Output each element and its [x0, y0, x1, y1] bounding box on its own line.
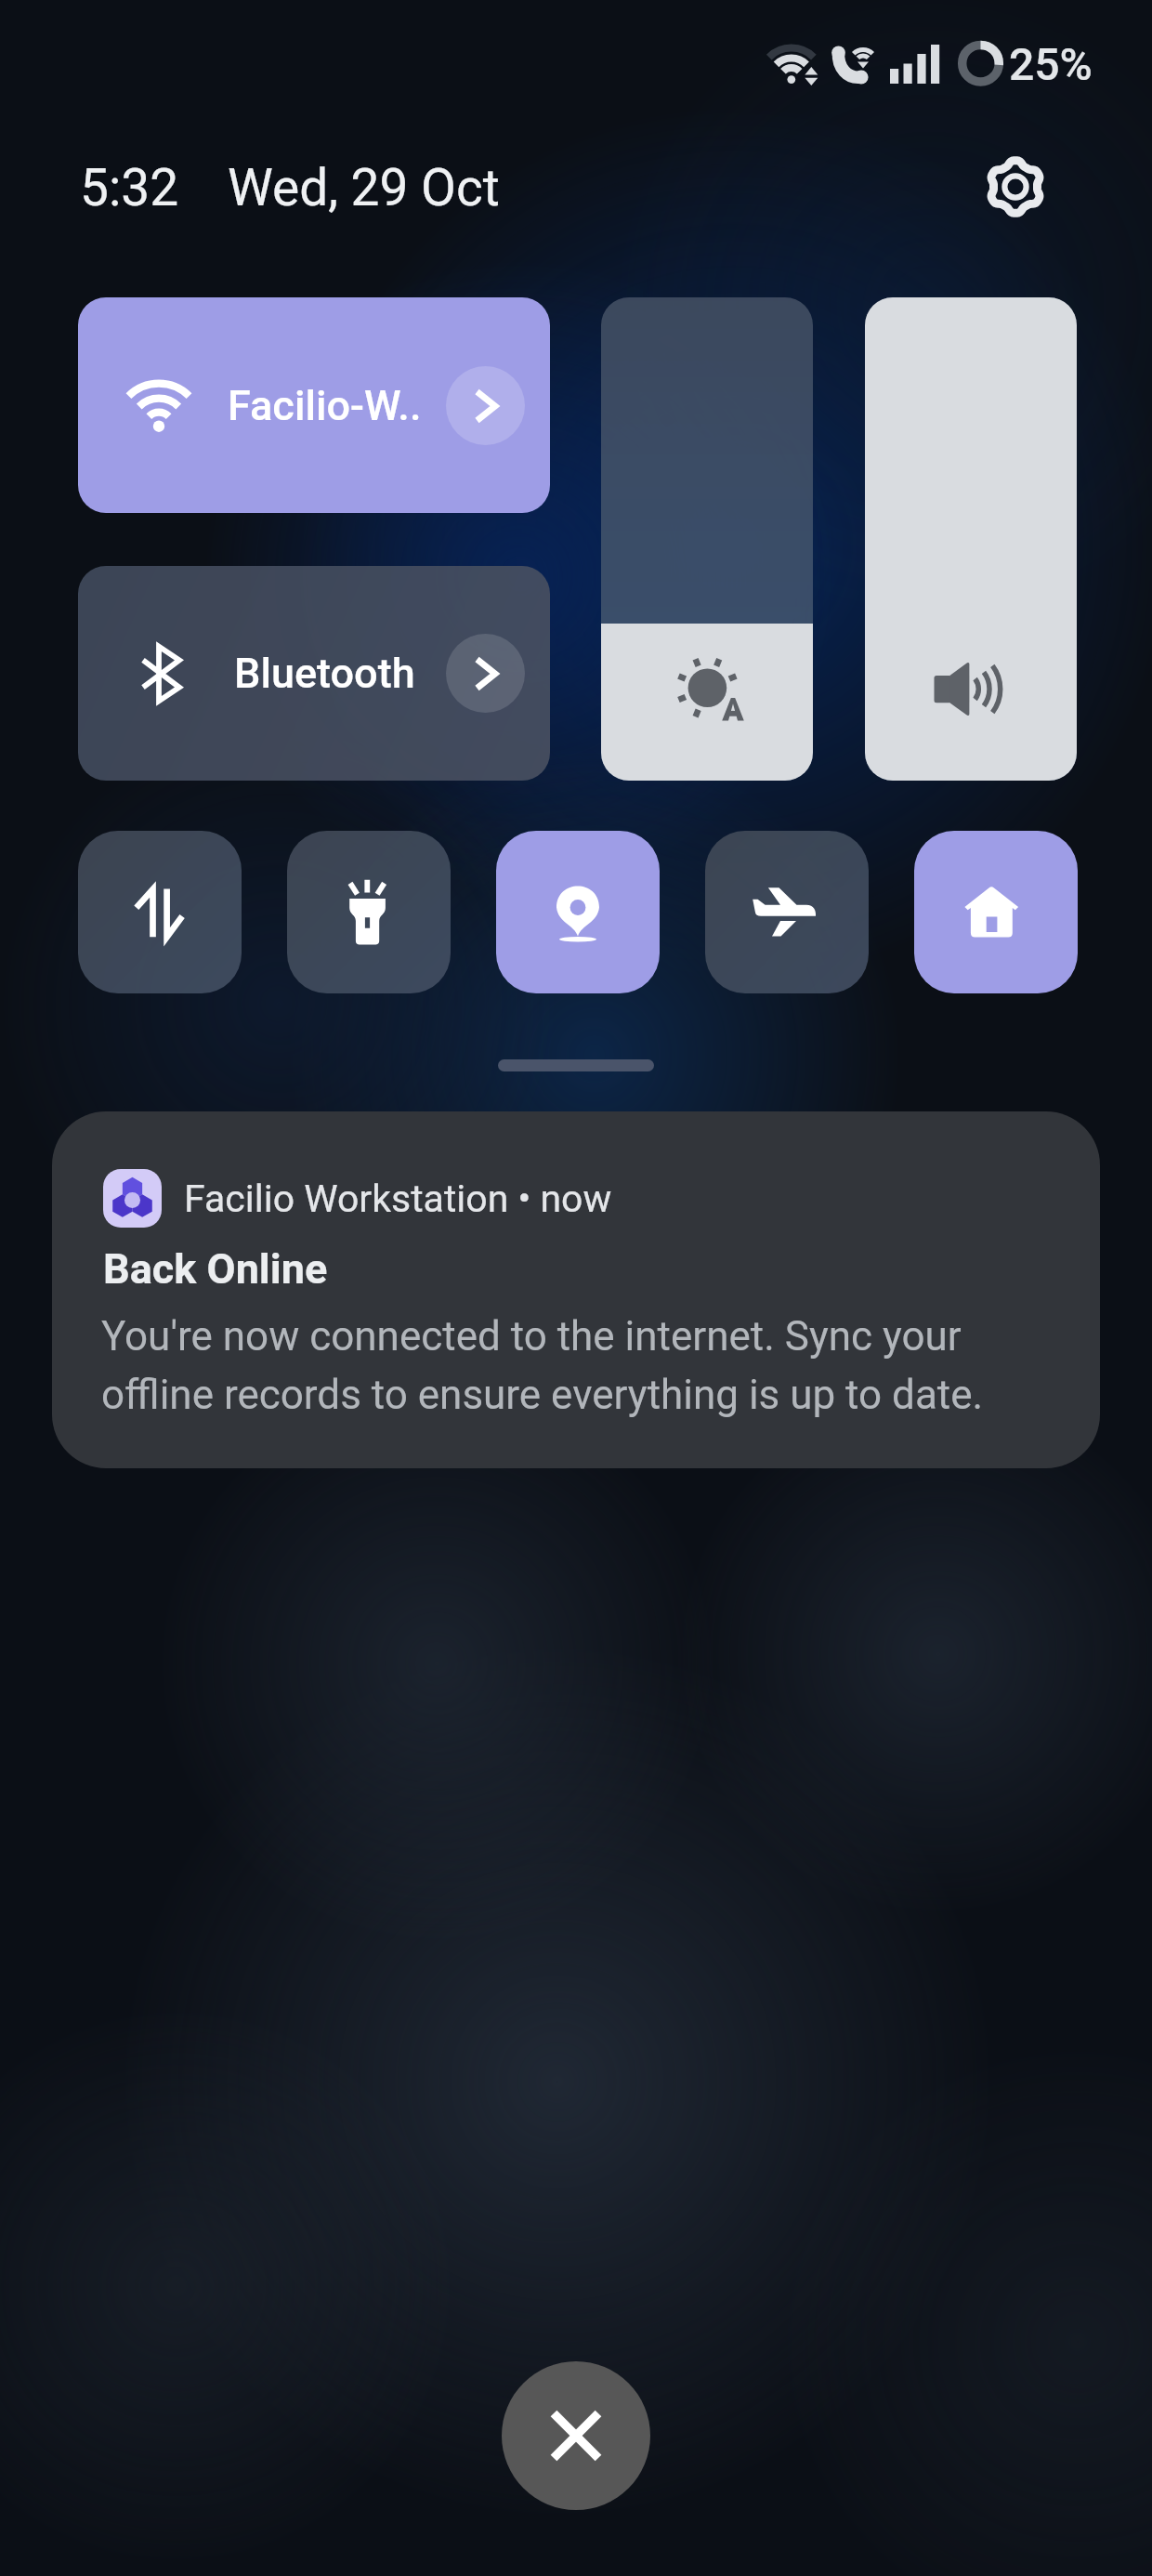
button[interactable]: Flashlight	[287, 831, 451, 993]
staticText: Bluetooth	[234, 649, 415, 698]
staticText: You're now connected to the internet. Sy…	[101, 1312, 1086, 1419]
staticText: 5:32	[80, 158, 179, 217]
staticText: 25%	[1009, 38, 1093, 90]
button[interactable]: Brightness	[601, 297, 813, 781]
button[interactable]: Close	[502, 2361, 650, 2510]
staticText: Facilio Workstation • now	[184, 1176, 612, 1221]
staticText: Facilio-W..	[228, 381, 422, 430]
button[interactable]: Mobile data	[78, 831, 242, 993]
button[interactable]: Airplane mode	[705, 831, 869, 993]
staticText: Back Online	[103, 1244, 328, 1294]
button[interactable]: Bluetooth	[78, 566, 550, 781]
button[interactable]: Home	[914, 831, 1078, 993]
button[interactable]: Facilio Workstation • now	[52, 1111, 1100, 1468]
staticText: Wed, 29 Oct	[228, 158, 500, 217]
button[interactable]: Settings	[976, 148, 1054, 226]
button[interactable]: Wi-Fi Facilio-W	[78, 297, 550, 513]
button[interactable]: Location	[496, 831, 660, 993]
button[interactable]: Volume	[865, 297, 1077, 781]
